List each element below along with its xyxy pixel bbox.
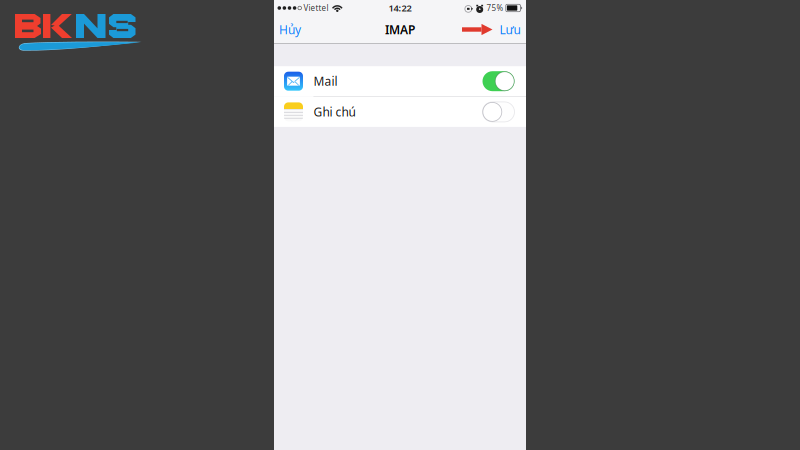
button[interactable]: Hủy [274, 16, 308, 43]
staticText: 14:22 [388, 2, 411, 14]
staticText: Mail [313, 73, 337, 89]
staticText: Ghi chú [313, 104, 355, 120]
button[interactable]: Lưu [499, 16, 526, 43]
staticText: 75% [487, 3, 504, 13]
staticText: Viettel [303, 3, 328, 13]
staticText: Hủy [279, 21, 301, 37]
staticText: Lưu [499, 21, 520, 37]
button[interactable]: Mail [274, 66, 526, 96]
button[interactable]: Ghi chú [274, 97, 526, 127]
staticText: IMAP [385, 21, 415, 37]
